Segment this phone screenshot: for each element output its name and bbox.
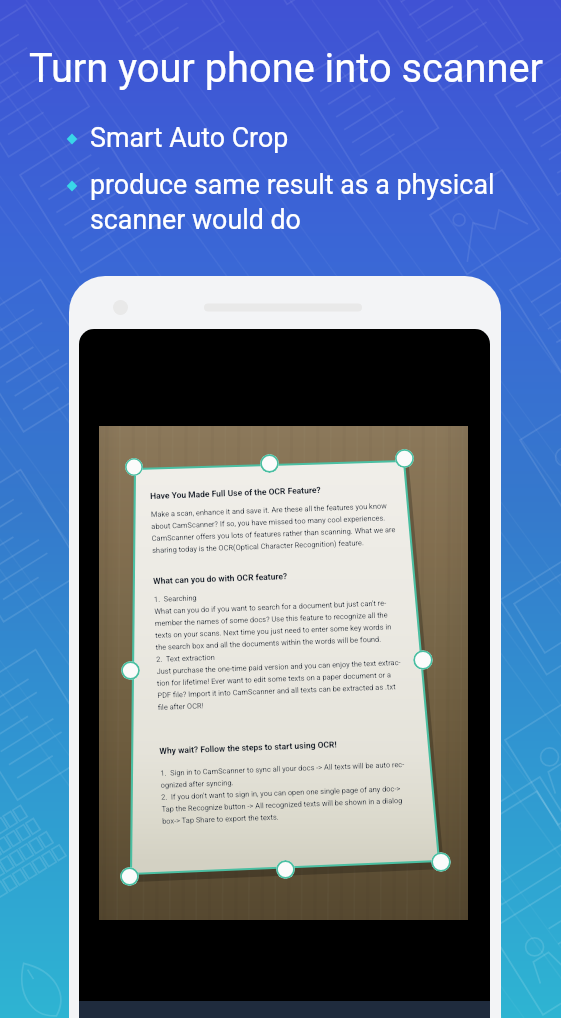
button[interactable]: Adjust crop corner: [395, 449, 414, 468]
staticText: produce same result as a physical scanne…: [90, 169, 495, 236]
button[interactable]: Adjust crop corner: [120, 867, 139, 886]
staticText: Make a scan, enhance it and save it. Are…: [151, 501, 396, 555]
button[interactable]: Adjust crop corner: [260, 454, 279, 473]
button[interactable]: Adjust crop corner: [121, 661, 140, 680]
button[interactable]: Adjust crop corner: [431, 852, 451, 872]
staticText: Why wait? Follow the steps to start usin…: [159, 739, 337, 756]
button[interactable]: Adjust crop corner: [276, 860, 295, 879]
staticText: 1. Searching What can you do if you want…: [154, 586, 403, 712]
button[interactable]: Adjust crop corner: [125, 458, 143, 476]
staticText: 1. Sign in to CamScanner to sync all you…: [160, 760, 407, 826]
staticText: Smart Auto Crop: [90, 122, 289, 153]
staticText: What can you do with OCR feature?: [153, 571, 287, 586]
staticText: Turn your phone into scanner: [29, 45, 544, 92]
staticText: Have You Made Full Use of the OCR Featur…: [150, 485, 321, 501]
button[interactable]: Adjust crop corner: [413, 650, 433, 670]
